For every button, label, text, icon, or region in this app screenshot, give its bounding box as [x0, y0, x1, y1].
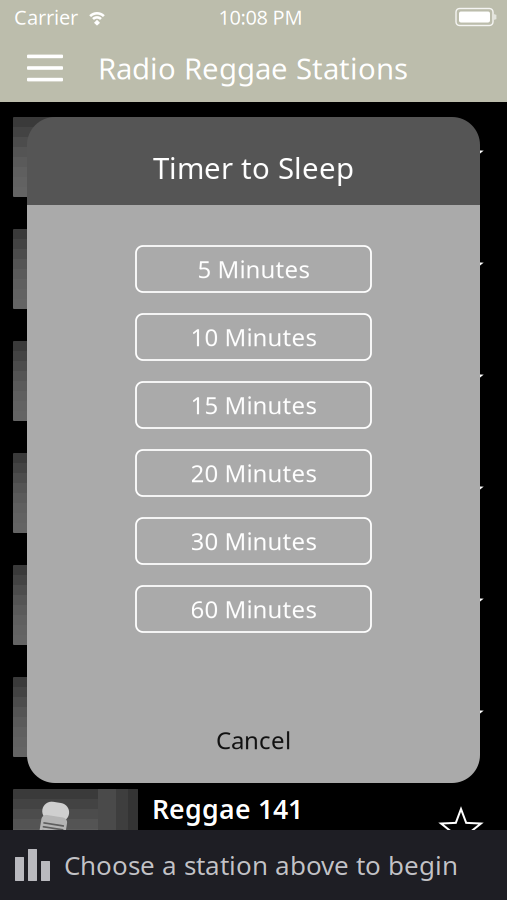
staticText: 15 Minutes — [190, 389, 316, 421]
button[interactable]: 5 Minutes — [136, 246, 371, 292]
staticText: 60 Minutes — [190, 593, 316, 625]
staticText: 30 Minutes — [190, 525, 316, 557]
staticText: Radio Reggae Stations — [98, 48, 408, 87]
button[interactable]: Reggae 3 — [0, 326, 507, 438]
staticText: Reggae 141 — [152, 791, 303, 826]
button[interactable]: 15 Minutes — [136, 382, 371, 428]
button[interactable]: Reggae 141 — [0, 774, 507, 886]
button[interactable]: Reggae 4 — [0, 438, 507, 550]
staticText: Reggae 4 — [152, 455, 273, 490]
staticText: 10 Minutes — [190, 321, 316, 353]
staticText: 10:08 PM — [218, 4, 302, 30]
button[interactable]: Reggae 6 — [0, 662, 507, 774]
button[interactable]: 10 Minutes — [136, 314, 371, 360]
staticText: Reggae 5 — [152, 567, 273, 602]
button[interactable]: 30 Minutes — [136, 518, 371, 564]
staticText: Cancel — [216, 724, 291, 756]
staticText: Reggae 2 — [152, 231, 273, 266]
staticText: 5 Minutes — [197, 253, 309, 285]
staticText: 20 Minutes — [190, 457, 316, 489]
button[interactable]: 60 Minutes — [136, 586, 371, 632]
staticText: Carrier — [14, 4, 78, 30]
button[interactable]: 20 Minutes — [136, 450, 371, 496]
button[interactable]: Menu — [14, 35, 76, 101]
button[interactable]: Cancel — [27, 715, 480, 765]
button[interactable]: Reggae 5 — [0, 550, 507, 662]
button[interactable]: Choose a station above to begin — [0, 830, 507, 900]
staticText: Timer to Sleep — [153, 148, 354, 187]
staticText: Reggae 3 — [152, 343, 273, 378]
button[interactable]: Reggae 1 — [0, 102, 507, 214]
staticText: Choose a station above to begin — [64, 847, 458, 883]
button[interactable]: Reggae 2 — [0, 214, 507, 326]
